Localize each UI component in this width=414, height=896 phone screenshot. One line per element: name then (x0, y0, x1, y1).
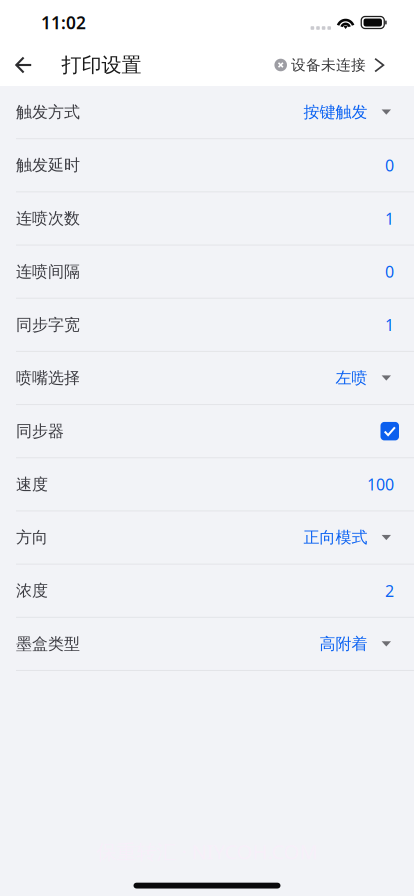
button[interactable]: 同步器 (0, 405, 414, 457)
staticText: 设备未连接 (291, 56, 366, 74)
staticText: 左喷 (336, 368, 368, 388)
staticText: 方向 (16, 528, 48, 547)
staticText: 高附着 (320, 634, 368, 654)
button[interactable]: 触发方式 (0, 86, 414, 138)
staticText: 连喷次数 (16, 209, 80, 228)
staticText: 按键触发 (304, 102, 368, 122)
staticText: 连喷间隔 (16, 262, 80, 281)
staticText: 2 (385, 580, 394, 601)
button[interactable]: 设备未连接 (274, 44, 414, 85)
button[interactable]: 同步字宽 (0, 299, 414, 351)
staticText: 浓度 (16, 581, 48, 601)
button[interactable]: 连喷次数 (0, 192, 414, 245)
staticText: 速度 (16, 474, 48, 494)
button[interactable]: Back (0, 44, 61, 85)
staticText: 同步字宽 (16, 315, 80, 335)
staticText: 100 (367, 474, 394, 495)
staticText: 触发方式 (16, 102, 80, 122)
button[interactable]: 浓度 (0, 565, 414, 617)
staticText: 11:02 (41, 11, 86, 34)
button[interactable]: 喷嘴选择 (0, 352, 414, 404)
staticText: 1 (385, 208, 394, 229)
staticText: 墨盒类型 (16, 634, 80, 654)
staticText: 正向模式 (304, 528, 368, 547)
button[interactable]: 速度 (0, 458, 414, 510)
button[interactable]: 触发延时 (0, 139, 414, 191)
staticText: 喷嘴选择 (16, 368, 80, 388)
button[interactable]: 方向 (0, 511, 414, 564)
staticText: 打印设置 (61, 53, 141, 77)
staticText: 触发延时 (16, 155, 80, 175)
staticText: 0 (385, 155, 394, 176)
button[interactable]: 墨盒类型 (0, 618, 414, 670)
staticText: 0 (385, 261, 394, 282)
staticText: 1 (385, 314, 394, 335)
button[interactable]: 连喷间隔 (0, 245, 414, 298)
staticText: 同步器 (16, 421, 64, 441)
